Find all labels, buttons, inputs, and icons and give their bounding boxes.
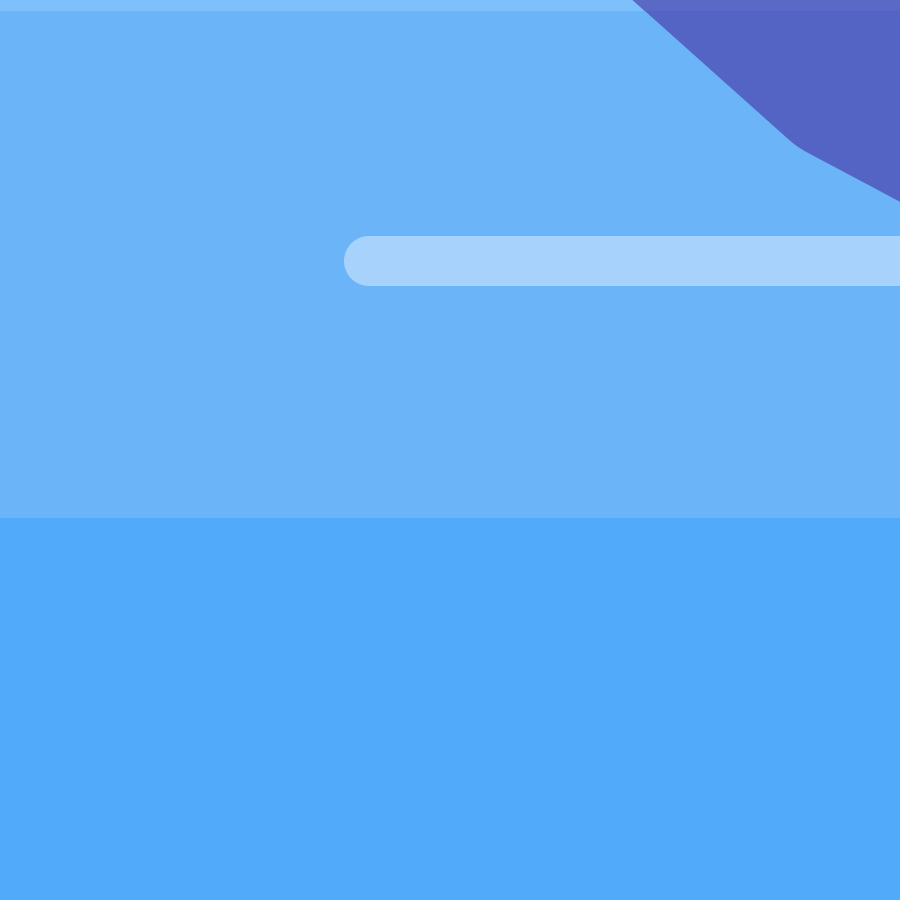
button[interactable]: Search [0, 236, 900, 286]
